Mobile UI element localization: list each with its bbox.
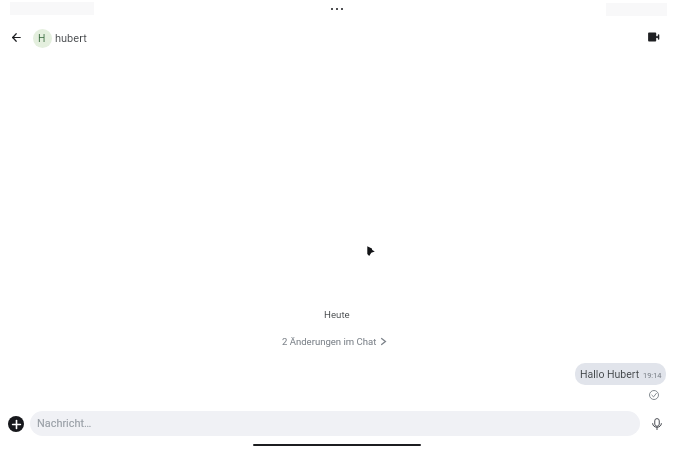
button[interactable]: Sprachnachricht [646, 413, 668, 435]
staticText: Nachricht… [37, 417, 92, 430]
staticText: Heute [324, 309, 350, 320]
button[interactable]: 2 Änderungen im Chat [276, 334, 392, 349]
button[interactable]: Nachricht… [30, 411, 640, 436]
button[interactable]: Hallo Hubert [575, 363, 666, 385]
button[interactable]: Anhang hinzufügen [8, 416, 24, 432]
button[interactable]: H [33, 27, 87, 50]
staticText: H [38, 32, 46, 44]
staticText: 2 Änderungen im Chat [282, 336, 377, 347]
button[interactable]: Gesendet [649, 390, 659, 400]
staticText: hubert [55, 32, 87, 45]
button[interactable]: Zurück [3, 24, 29, 50]
staticText: 19:14 [643, 371, 662, 380]
staticText: Hallo Hubert [580, 368, 640, 380]
button[interactable]: Videoanruf [642, 25, 666, 49]
